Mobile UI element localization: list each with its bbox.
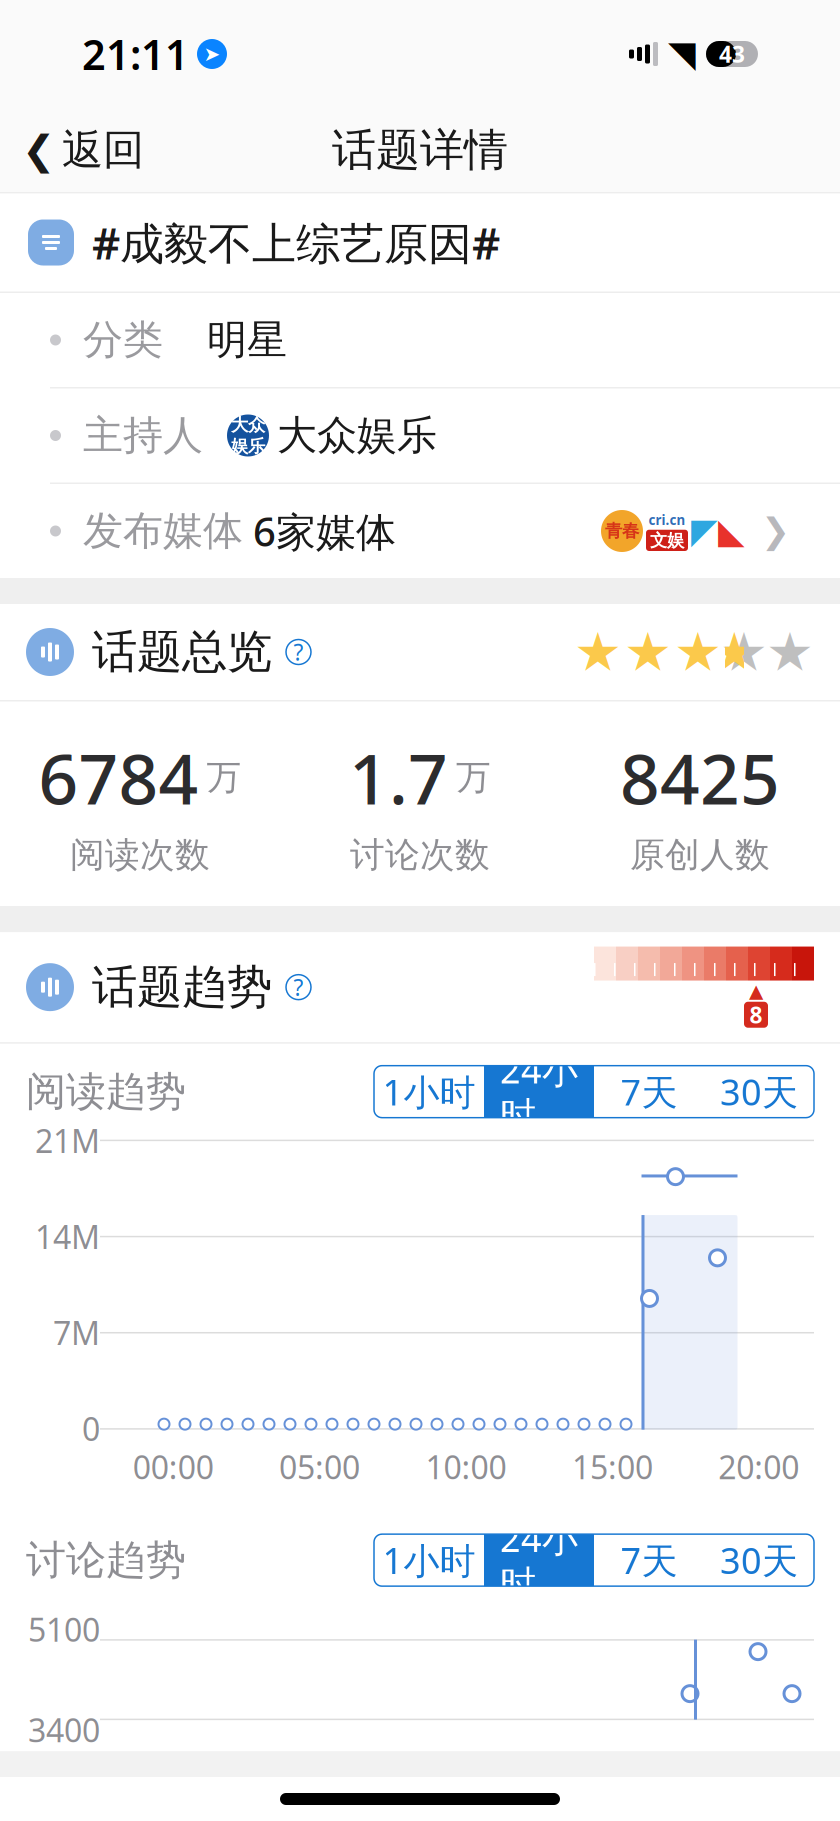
staticText: 21M xyxy=(35,1119,100,1162)
staticText: 00:00 xyxy=(133,1446,214,1488)
staticText: 大众娱乐 xyxy=(277,411,437,460)
staticText: 5100 xyxy=(28,1608,100,1651)
staticText: 1小时 xyxy=(382,1068,475,1115)
staticText: ▲ xyxy=(749,981,763,1002)
staticText: 21:11 xyxy=(82,27,189,81)
staticText: ◤ xyxy=(691,511,718,551)
staticText: 明星 xyxy=(207,315,287,364)
staticText: 7M xyxy=(53,1311,100,1354)
staticText: 主持人 xyxy=(83,411,203,460)
staticText: 15:00 xyxy=(572,1446,653,1488)
staticText: 话题趋势 xyxy=(92,959,272,1015)
staticText: ➤ xyxy=(203,43,220,65)
staticText: 6784 xyxy=(38,731,198,824)
staticText: 青春 xyxy=(605,520,639,542)
staticText: 3400 xyxy=(28,1709,100,1751)
button[interactable]: 1小时 xyxy=(374,1534,484,1586)
button[interactable]: 24小时 xyxy=(484,1066,594,1118)
staticText: 43 xyxy=(719,39,745,69)
staticText: ★ xyxy=(720,622,768,682)
button[interactable]: 主持人 xyxy=(0,388,840,482)
button[interactable]: 30天 xyxy=(704,1534,814,1586)
staticText: ? xyxy=(293,972,303,1002)
staticText: ❯ xyxy=(761,511,790,551)
staticText: ★ xyxy=(624,622,672,682)
staticText: ? xyxy=(293,637,303,667)
staticText: ★ xyxy=(710,622,758,682)
staticText: 1.7 xyxy=(349,731,448,824)
staticText: 30天 xyxy=(720,1068,798,1115)
button[interactable]: 30天 xyxy=(704,1066,814,1118)
staticText: 发布媒体 xyxy=(83,506,243,555)
staticText: 原创人数 xyxy=(630,834,770,876)
staticText: 分类 xyxy=(83,315,163,364)
staticText: 阅读次数 xyxy=(70,834,210,876)
staticText: #成毅不上综艺原因# xyxy=(92,213,500,272)
staticText: cri.cn xyxy=(648,511,685,529)
staticText: 1小时 xyxy=(382,1536,475,1584)
staticText: 30天 xyxy=(720,1536,798,1584)
button[interactable]: 24小时 xyxy=(484,1534,594,1586)
button[interactable]: ❮ xyxy=(0,113,166,187)
staticText: ★ xyxy=(674,622,722,682)
staticText: 话题详情 xyxy=(332,123,508,177)
staticText: 7天 xyxy=(620,1536,677,1584)
staticText: 20:00 xyxy=(718,1446,799,1488)
staticText: 05:00 xyxy=(279,1446,360,1488)
staticText: 8 xyxy=(749,1000,762,1030)
staticText: 讨论趋势 xyxy=(26,1536,186,1585)
button[interactable]: 发布媒体 xyxy=(0,484,840,578)
staticText: ◥ xyxy=(668,34,696,74)
staticText: 8425 xyxy=(620,731,780,824)
staticText: 返回 xyxy=(62,125,144,175)
staticText: 万 xyxy=(206,756,241,799)
staticText: 话题总览 xyxy=(92,624,272,680)
button[interactable]: 话题趋势 xyxy=(0,932,840,1042)
staticText: 讨论次数 xyxy=(350,834,490,876)
staticText: 10:00 xyxy=(425,1446,506,1488)
button[interactable]: 7天 xyxy=(594,1066,704,1118)
button[interactable]: #成毅不上综艺原因# xyxy=(0,193,840,291)
staticText: ★ xyxy=(766,622,814,682)
button[interactable]: 话题总览 xyxy=(0,604,840,700)
staticText: ❮ xyxy=(22,127,56,173)
staticText: 万 xyxy=(456,756,491,799)
staticText: 24小时 xyxy=(500,1514,578,1606)
staticText: 文娱 xyxy=(650,530,684,551)
staticText: 14M xyxy=(35,1215,100,1258)
staticText: 娱乐 xyxy=(231,435,265,457)
staticText: 阅读趋势 xyxy=(26,1067,186,1116)
button[interactable]: 1小时 xyxy=(374,1066,484,1118)
button[interactable]: 7天 xyxy=(594,1534,704,1586)
staticText: ◣ xyxy=(718,511,745,551)
staticText: 0 xyxy=(82,1407,100,1450)
staticText: ★ xyxy=(574,622,622,682)
staticText: 7天 xyxy=(620,1068,677,1115)
staticText: 6家媒体 xyxy=(253,504,396,557)
staticText: 24小时 xyxy=(500,1046,578,1138)
staticText: 大众 xyxy=(231,414,265,435)
